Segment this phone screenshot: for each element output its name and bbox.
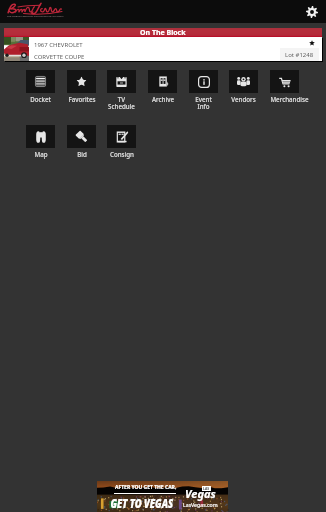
staticText: LAS (203, 486, 210, 491)
staticText: AFTER YOU GET THE CAR, (115, 484, 175, 491)
button[interactable]: Consign (107, 125, 136, 158)
staticText: Archive (152, 95, 174, 103)
staticText: Vegas (185, 486, 216, 501)
button[interactable]: 1967 CHEVROLET (4, 37, 322, 61)
staticText: Docket (30, 95, 51, 103)
button[interactable]: Vendors (229, 70, 258, 103)
staticText: TV Schedule (108, 95, 135, 110)
staticText: Bid (77, 150, 87, 158)
staticText: Vendors (231, 95, 256, 103)
button[interactable]: TV Schedule (107, 70, 136, 110)
staticText: 1967 CHEVROLET (34, 41, 83, 49)
button[interactable]: Bid (67, 125, 96, 158)
button[interactable]: AFTER YOU GET THE CAR, (97, 481, 228, 512)
staticText: Consign (110, 150, 134, 158)
staticText: Map (34, 150, 48, 158)
staticText: LasVegas.com (183, 501, 218, 508)
staticText: On The Block (140, 28, 186, 38)
staticText: GET TO VEGAS (110, 495, 156, 511)
staticText: CORVETTE COUPE (34, 53, 85, 61)
button[interactable]: Merchandise (270, 70, 299, 103)
button[interactable]: Event Info (189, 70, 218, 110)
button[interactable]: Settings (303, 3, 321, 21)
staticText: Favorites (68, 95, 96, 103)
staticText: Event Info (195, 95, 212, 110)
button[interactable]: Map (26, 125, 55, 158)
button[interactable]: Docket (26, 70, 55, 103)
button[interactable]: Favorites (67, 70, 96, 103)
staticText: Merchandise (270, 95, 299, 103)
staticText: Lot #1248 (285, 51, 314, 59)
staticText: THE WORLD'S GREATEST COLLECTOR CAR AUCTI… (7, 15, 63, 18)
button[interactable]: Archive (148, 70, 177, 103)
